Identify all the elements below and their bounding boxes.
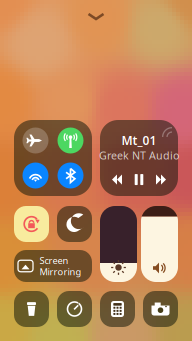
- button[interactable]: Timer: [57, 291, 92, 327]
- button[interactable]: Flashlight: [14, 291, 49, 327]
- button[interactable]: [57, 162, 83, 188]
- staticText: Screen: [39, 254, 68, 266]
- button[interactable]: Rotation Lock: [14, 206, 49, 242]
- button[interactable]: [22, 127, 48, 153]
- button[interactable]: Brightness: [100, 206, 137, 282]
- button[interactable]: [57, 127, 83, 153]
- button[interactable]: Rewind: [107, 171, 127, 189]
- button[interactable]: [22, 162, 48, 188]
- button[interactable]: Fast forward: [151, 171, 171, 189]
- button[interactable]: Do Not Disturb: [57, 206, 92, 242]
- button[interactable]: Pause: [129, 171, 149, 189]
- button[interactable]: Camera: [143, 291, 178, 327]
- button[interactable]: Calculator: [100, 291, 135, 327]
- staticText: Mirroring: [39, 265, 81, 278]
- staticText: Mt_01: [121, 132, 156, 148]
- button[interactable]: Screen: [14, 250, 92, 282]
- button[interactable]: Volume: [141, 206, 178, 282]
- staticText: Greek NT Audio: [99, 148, 179, 163]
